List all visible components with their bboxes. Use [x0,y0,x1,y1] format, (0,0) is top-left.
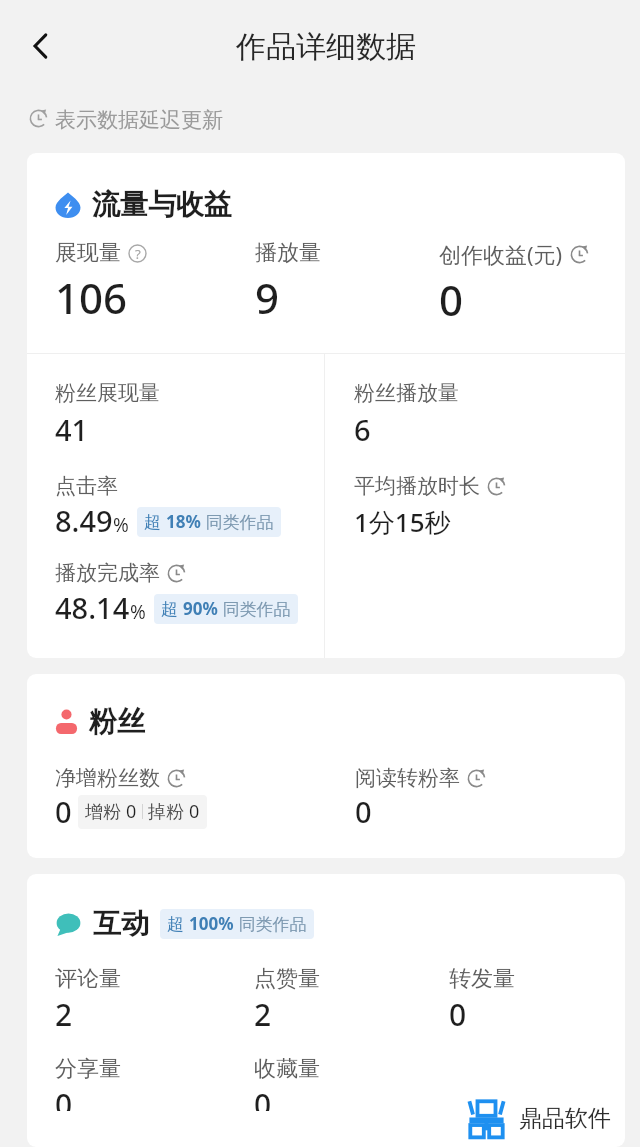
staticText: 9 [255,269,280,326]
staticText: 点赞量 [254,965,320,993]
staticText: 作品详细数据 [236,28,416,66]
staticText: 评论量 [55,965,121,993]
staticText: 18% [166,510,201,533]
staticText: 创作收益(元) [439,239,563,269]
staticText: 同类作品 [234,912,307,935]
staticText: ? [135,245,141,263]
staticText: 播放量 [255,239,321,267]
staticText: 0 [55,1084,73,1111]
staticText: 超 [144,510,166,533]
staticText: 0 [449,994,467,1035]
staticText: 净增粉丝数 [55,765,160,791]
staticText: 粉丝 [89,704,145,739]
staticText: 掉粉 [148,799,189,824]
staticText: 播放完成率 [55,560,160,586]
staticText: 粉丝展现量 [55,380,160,406]
staticText: 106 [55,269,128,326]
staticText: % [130,599,146,625]
staticText: 粉丝播放量 [354,380,459,406]
staticText: 展现量 [55,239,121,267]
staticText: 点击率 [55,473,118,499]
staticText: 0 [254,1084,272,1111]
staticText: % [113,512,129,538]
staticText: 增粉 [85,799,126,824]
staticText: 0 [189,799,200,824]
staticText: 0 [126,799,137,824]
staticText: 8.49 [55,501,113,540]
staticText: 100% [189,912,234,935]
staticText: 41 [55,410,89,449]
staticText: 48.14 [55,588,130,627]
staticText: 90% [183,597,218,620]
staticText: 同类作品 [201,510,274,533]
staticText: 收藏量 [254,1055,320,1083]
button[interactable]: Back [10,15,72,77]
staticText: 阅读转粉率 [355,765,460,791]
staticText: 1分15秒 [354,504,451,540]
staticText: 6 [354,410,371,449]
staticText: 表示数据延迟更新 [55,107,223,133]
staticText: 0 [55,792,72,831]
staticText: 互动 [93,906,149,941]
staticText: 平均播放时长 [354,473,480,499]
staticText: 鼎品软件 [519,1104,611,1133]
staticText: 0 [439,271,464,328]
staticText: 2 [55,994,73,1035]
staticText: 2 [254,994,272,1035]
staticText: 转发量 [449,965,515,993]
staticText: 0 [355,792,372,831]
staticText: 超 [167,912,189,935]
staticText: 超 [161,597,183,620]
staticText: 分享量 [55,1055,121,1083]
staticText: 同类作品 [218,597,291,620]
staticText: 流量与收益 [92,187,232,222]
